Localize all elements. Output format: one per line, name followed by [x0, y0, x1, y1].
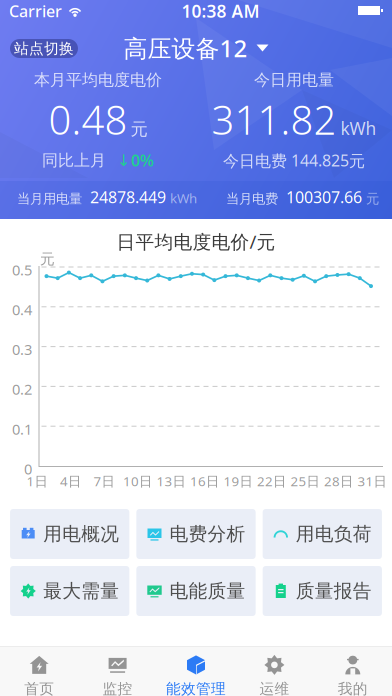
button[interactable]: 最大需量 [10, 566, 129, 616]
staticText: ↓ [117, 151, 130, 169]
staticText: 元 [366, 191, 379, 207]
staticText: 今日电费 144.825元 [223, 150, 365, 171]
staticText: 首页 [24, 680, 54, 696]
staticText: 今日用电量 [254, 70, 334, 90]
button[interactable]: 用电负荷 [263, 509, 382, 559]
staticText: 质量报告 [296, 579, 372, 602]
staticText: 本月平均电度电价 [34, 70, 162, 90]
button[interactable]: 质量报告 [263, 566, 382, 616]
staticText: 0.2 [12, 379, 32, 399]
button[interactable]: 能效管理 [157, 646, 235, 696]
staticText: 监控 [103, 680, 133, 696]
staticText: 25日 [290, 472, 319, 490]
staticText: 0 [24, 459, 32, 478]
staticText: kWh [340, 117, 376, 140]
button[interactable]: 首页 [0, 646, 78, 696]
staticText: 10日 [123, 472, 152, 490]
staticText: 电费分析 [169, 522, 245, 545]
staticText: 最大需量 [43, 579, 119, 602]
staticText: 用电负荷 [296, 522, 372, 545]
staticText: 19日 [223, 472, 252, 490]
staticText: 28日 [324, 472, 353, 490]
staticText: 能效管理 [166, 680, 226, 696]
staticText: 元 [130, 118, 147, 140]
staticText: 13日 [156, 472, 185, 490]
staticText: 4日 [60, 472, 81, 490]
staticText: 运维 [259, 680, 289, 696]
button[interactable]: 运维 [235, 646, 314, 696]
staticText: 站点切换 [14, 39, 74, 57]
staticText: 0% [131, 150, 154, 171]
staticText: 24878.449 [82, 186, 170, 208]
staticText: 同比上月 [42, 151, 106, 170]
staticText: 0.1 [12, 419, 32, 439]
staticText: 1日 [26, 472, 47, 490]
button[interactable]: 我的 [314, 646, 392, 696]
staticText: 22日 [257, 472, 286, 490]
staticText: 高压设备12 [123, 32, 247, 64]
staticText: 7日 [93, 472, 114, 490]
staticText: 当月用电量 [17, 191, 82, 207]
button[interactable]: 监控 [78, 646, 157, 696]
staticText: 电能质量 [169, 579, 245, 602]
staticText: 16日 [190, 472, 219, 490]
staticText: 我的 [338, 680, 368, 696]
staticText: 0.48 [48, 93, 127, 146]
staticText: 100307.66 [278, 186, 366, 208]
staticText: 0.3 [12, 340, 32, 359]
staticText: 当月电费 [226, 191, 278, 207]
staticText: 用电概况 [43, 522, 119, 545]
button[interactable]: 站点切换 [10, 39, 78, 58]
staticText: 0.4 [12, 300, 32, 319]
button[interactable]: 电费分析 [136, 509, 256, 559]
staticText: kWh [170, 189, 197, 207]
button[interactable]: 电能质量 [136, 566, 256, 616]
button[interactable]: 用电概况 [10, 509, 129, 559]
staticText: 日平均电度电价/元 [116, 229, 275, 254]
staticText: 31日 [357, 472, 386, 490]
staticText: Carrier [9, 0, 62, 22]
staticText: 10:38 AM [181, 0, 259, 22]
staticText: 0.5 [12, 260, 32, 279]
staticText: 311.82 [211, 93, 336, 146]
staticText: 元 [40, 250, 55, 268]
